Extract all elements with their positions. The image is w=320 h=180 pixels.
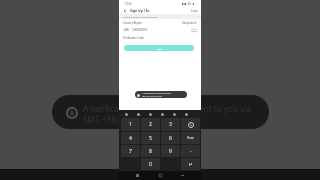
- button[interactable]: Keyboard tool: [136, 112, 141, 117]
- staticText: A verification code has been: [142, 92, 171, 95]
- staticText: 5: [149, 135, 152, 142]
- button[interactable]: ·: [181, 145, 200, 157]
- button[interactable]: ↵: [181, 158, 200, 170]
- staticText: Verification Code: [123, 36, 144, 40]
- button[interactable]: 6: [161, 132, 180, 144]
- button[interactable]: Done: [181, 132, 200, 144]
- button[interactable]: 0: [141, 158, 160, 170]
- staticText: 3: [169, 121, 172, 128]
- button[interactable]: +880: [123, 26, 197, 34]
- button[interactable]: Recents: [134, 172, 141, 179]
- staticText: 1: [129, 121, 132, 128]
- staticText: Login: [191, 9, 198, 13]
- button[interactable]: 2: [141, 118, 160, 131]
- staticText: 1XXXXXXXXX: [132, 28, 148, 32]
- button[interactable]: 5: [141, 132, 160, 144]
- staticText: 8: [149, 148, 152, 155]
- staticText: SMS +8801XXXXXXXXX: [83, 114, 170, 125]
- staticText: Done: [187, 136, 194, 140]
- button[interactable]: A verification code has been: [135, 91, 187, 98]
- staticText: sent to you via SMS: [142, 95, 162, 98]
- staticText: GET: [157, 47, 162, 50]
- button[interactable]: Keyboard tool: [184, 112, 189, 117]
- staticText: Country/Region: [123, 21, 143, 25]
- button[interactable]: GET: [124, 45, 194, 51]
- button[interactable]: 9: [161, 145, 180, 157]
- staticText: Phone number and verification: [123, 15, 158, 18]
- button[interactable]: Keyboard tool: [148, 112, 153, 117]
- staticText: Bangladesh: [182, 21, 197, 25]
- button[interactable]: Back: [179, 172, 186, 179]
- staticText: Verify: [191, 28, 197, 31]
- button[interactable]: Home: [157, 172, 164, 179]
- button[interactable]: A verification code has been sent to you…: [52, 95, 269, 129]
- staticText: 9: [169, 148, 172, 155]
- staticText: +880: [123, 28, 129, 32]
- button[interactable]: Keyboard tool: [172, 112, 177, 117]
- staticText: 2: [149, 121, 152, 128]
- button[interactable]: Keyboard tool: [124, 112, 129, 117]
- staticText: 7: [129, 148, 132, 155]
- staticText: 4: [129, 135, 132, 142]
- button[interactable]: Back: [122, 8, 127, 13]
- button[interactable]: 3: [161, 118, 180, 131]
- button[interactable]: [181, 118, 200, 131]
- staticText: 6: [169, 135, 172, 142]
- staticText: ↵: [188, 161, 193, 167]
- button[interactable]: 8: [141, 145, 160, 157]
- button[interactable]: 7: [121, 145, 140, 157]
- staticText: ▮▮▮ 4G ▮: [182, 2, 195, 6]
- button[interactable]: 1: [121, 118, 140, 131]
- button[interactable]: Keyboard tool: [160, 112, 165, 117]
- staticText: Sign Up / In: [130, 8, 150, 13]
- button[interactable]: Country/Region: [123, 19, 197, 26]
- staticText: 0: [149, 161, 152, 168]
- button[interactable]: 4: [121, 132, 140, 144]
- staticText: 10:45: [125, 2, 132, 6]
- staticText: A verification code has been sent to you…: [83, 103, 252, 114]
- staticText: ·: [190, 148, 192, 155]
